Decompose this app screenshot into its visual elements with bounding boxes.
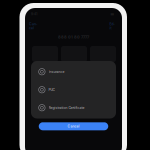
- button[interactable]: Insurance: [31, 63, 116, 81]
- button[interactable]: PUC: [31, 81, 116, 99]
- staticText: Cancel: [29, 22, 37, 30]
- button[interactable]: Registration Certificate: [31, 99, 116, 117]
- staticText: Registration Certificate: [48, 106, 84, 110]
- button[interactable]: Edit: [109, 24, 114, 28]
- staticText: Cancel: [67, 124, 79, 128]
- staticText: PUC: [48, 88, 54, 92]
- button[interactable]: Cancel: [39, 122, 108, 130]
- staticText: 9:41: [31, 12, 37, 16]
- staticText: 888 01 80 7777: [58, 35, 89, 39]
- staticText: ▮▮▮: [110, 12, 113, 15]
- staticText: Edit: [109, 22, 114, 30]
- staticText: Insurance: [48, 70, 64, 74]
- button[interactable]: Cancel: [29, 24, 38, 28]
